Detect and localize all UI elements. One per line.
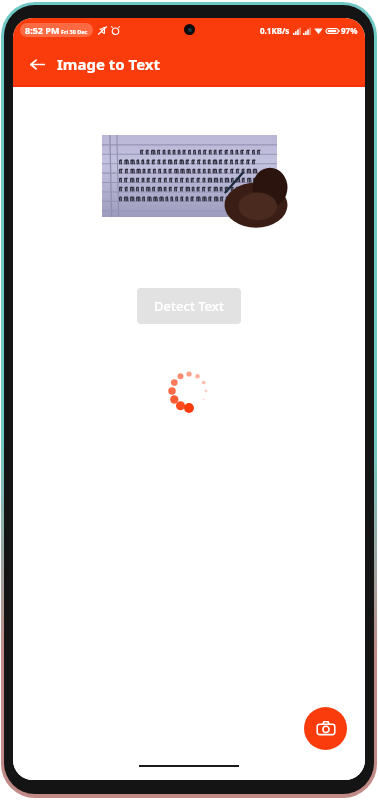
button[interactable]: Take photo xyxy=(304,707,347,750)
staticText: Fri 30 Dec xyxy=(61,28,88,35)
button[interactable]: Detect Text xyxy=(137,288,241,324)
staticText: Detect Text xyxy=(154,297,224,315)
staticText: 97% xyxy=(341,25,358,36)
staticText: 0.1KB/s xyxy=(260,25,290,36)
button[interactable]: Back xyxy=(22,49,52,79)
staticText: 8:52 PM xyxy=(25,24,60,36)
staticText: Image to Text xyxy=(57,54,161,74)
